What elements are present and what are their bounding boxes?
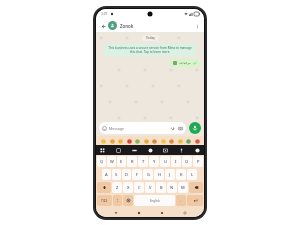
button[interactable]: M bbox=[178, 182, 188, 193]
staticText: K bbox=[180, 172, 183, 177]
staticText: ?123 bbox=[101, 199, 108, 203]
button[interactable] bbox=[143, 138, 149, 144]
staticText: M bbox=[181, 185, 185, 190]
button[interactable]: O bbox=[182, 156, 192, 167]
staticText: H bbox=[158, 172, 161, 177]
button[interactable]: Keyboard tool 2 bbox=[115, 147, 122, 154]
staticText: 3:07 bbox=[101, 12, 108, 16]
staticText: L bbox=[191, 172, 194, 177]
staticText: V bbox=[149, 185, 152, 190]
button[interactable]: S bbox=[112, 169, 121, 180]
button[interactable] bbox=[109, 138, 115, 144]
staticText: T bbox=[142, 159, 145, 164]
staticText: This business uses a secure service from… bbox=[107, 46, 193, 54]
staticText: B bbox=[160, 185, 163, 190]
button[interactable]: H bbox=[154, 169, 164, 180]
button[interactable]: . bbox=[176, 195, 186, 206]
staticText: Z bbox=[116, 185, 119, 190]
staticText: O bbox=[185, 159, 189, 164]
button[interactable]: K bbox=[176, 169, 186, 180]
button[interactable]: Back bbox=[112, 209, 119, 216]
button[interactable]: Voice message bbox=[189, 122, 201, 134]
button[interactable]: G bbox=[143, 169, 153, 180]
staticText: . bbox=[180, 198, 182, 203]
staticText: E bbox=[120, 159, 123, 164]
button[interactable]: Emoji bbox=[113, 195, 122, 206]
button[interactable]: English bbox=[134, 195, 175, 206]
button[interactable]: L bbox=[187, 169, 197, 180]
button[interactable]: F bbox=[132, 169, 142, 180]
button[interactable] bbox=[100, 138, 106, 144]
staticText: Y bbox=[153, 159, 156, 164]
button[interactable]: Backspace bbox=[189, 182, 203, 193]
button[interactable]: R bbox=[127, 156, 137, 167]
button[interactable] bbox=[117, 138, 123, 144]
button[interactable]: Z bbox=[112, 182, 122, 193]
button[interactable]: Keyboard options bbox=[181, 209, 188, 216]
button[interactable] bbox=[168, 138, 174, 144]
staticText: D bbox=[125, 172, 128, 177]
button[interactable]: Recents bbox=[158, 209, 165, 216]
button[interactable]: Q bbox=[97, 156, 106, 167]
button[interactable]: Enter bbox=[187, 195, 203, 206]
button[interactable]: B bbox=[156, 182, 166, 193]
button[interactable]: J bbox=[165, 169, 175, 180]
staticText: J bbox=[169, 172, 171, 177]
staticText: R bbox=[131, 159, 134, 164]
button[interactable]: N bbox=[167, 182, 177, 193]
button[interactable]: E bbox=[117, 156, 126, 167]
staticText: English bbox=[150, 199, 160, 203]
button[interactable]: Keyboard tool 6 bbox=[178, 147, 185, 154]
button[interactable]: P bbox=[193, 156, 203, 167]
button[interactable]: More options bbox=[193, 22, 201, 30]
staticText: U bbox=[164, 159, 167, 164]
button[interactable]: Shift bbox=[97, 182, 111, 193]
staticText: W bbox=[110, 159, 114, 164]
button[interactable] bbox=[126, 138, 132, 144]
staticText: X bbox=[127, 185, 130, 190]
button[interactable]: Home bbox=[135, 209, 142, 216]
staticText: مرحبا بك bbox=[179, 61, 191, 65]
staticText: A bbox=[105, 172, 108, 177]
button[interactable]: Keyboard tool 7 bbox=[194, 147, 201, 154]
button[interactable]: U bbox=[160, 156, 170, 167]
staticText: G bbox=[147, 172, 150, 177]
button[interactable] bbox=[185, 138, 191, 144]
staticText: Today bbox=[146, 36, 155, 40]
staticText: S bbox=[115, 172, 118, 177]
button[interactable]: Message bbox=[99, 122, 186, 134]
button[interactable] bbox=[177, 138, 183, 144]
button[interactable]: Settings bbox=[123, 195, 133, 206]
button[interactable]: Zonok bbox=[108, 21, 193, 30]
button[interactable] bbox=[160, 138, 166, 144]
button[interactable]: Back bbox=[99, 22, 107, 30]
button[interactable]: مرحبا بك bbox=[170, 59, 200, 67]
button[interactable]: I bbox=[171, 156, 181, 167]
button[interactable]: Y bbox=[149, 156, 159, 167]
button[interactable]: Keyboard tool 5 bbox=[162, 147, 169, 154]
staticText: F bbox=[136, 172, 139, 177]
button[interactable]: W bbox=[107, 156, 116, 167]
staticText: P bbox=[197, 159, 200, 164]
button[interactable]: X bbox=[123, 182, 133, 193]
staticText: Q bbox=[100, 159, 104, 164]
button[interactable] bbox=[151, 138, 157, 144]
staticText: Message bbox=[109, 126, 170, 131]
staticText: Zonok bbox=[120, 23, 134, 29]
button[interactable]: This business uses a secure service from… bbox=[104, 44, 196, 56]
button[interactable]: ?123 bbox=[97, 195, 112, 206]
button[interactable] bbox=[194, 138, 200, 144]
button[interactable]: V bbox=[145, 182, 155, 193]
button[interactable]: A bbox=[102, 169, 111, 180]
button[interactable] bbox=[134, 138, 140, 144]
staticText: I bbox=[175, 159, 177, 164]
button[interactable]: D bbox=[122, 169, 131, 180]
button[interactable]: Keyboard tool 3 bbox=[131, 147, 138, 154]
button[interactable]: T bbox=[138, 156, 148, 167]
staticText: C bbox=[138, 185, 141, 190]
button[interactable]: Keyboard tool 4 bbox=[147, 147, 154, 154]
button[interactable]: Keyboard tool 1 bbox=[99, 147, 106, 154]
button[interactable]: C bbox=[134, 182, 144, 193]
staticText: N bbox=[170, 185, 174, 190]
